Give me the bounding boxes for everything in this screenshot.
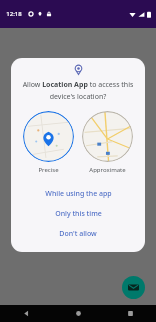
button[interactable]: Only this time <box>11 204 145 224</box>
button[interactable]: Recents <box>104 305 156 322</box>
button[interactable]: Approximate <box>78 110 137 175</box>
staticText: Approximate <box>89 166 126 174</box>
button[interactable]: While using the app <box>11 184 145 204</box>
staticText: Don't allow <box>59 229 97 239</box>
staticText: Precise <box>38 166 59 174</box>
staticText: Only this time <box>55 209 102 219</box>
button[interactable]: Precise <box>19 110 78 175</box>
staticText: 12:18 <box>6 10 22 18</box>
staticText: While using the app <box>45 189 112 199</box>
staticText: Allow Location App to access this device… <box>21 80 135 101</box>
button[interactable]: Compose message <box>122 276 145 299</box>
button[interactable]: Don't allow <box>11 224 145 244</box>
button[interactable]: Back <box>0 305 52 322</box>
button[interactable]: Home <box>52 305 104 322</box>
